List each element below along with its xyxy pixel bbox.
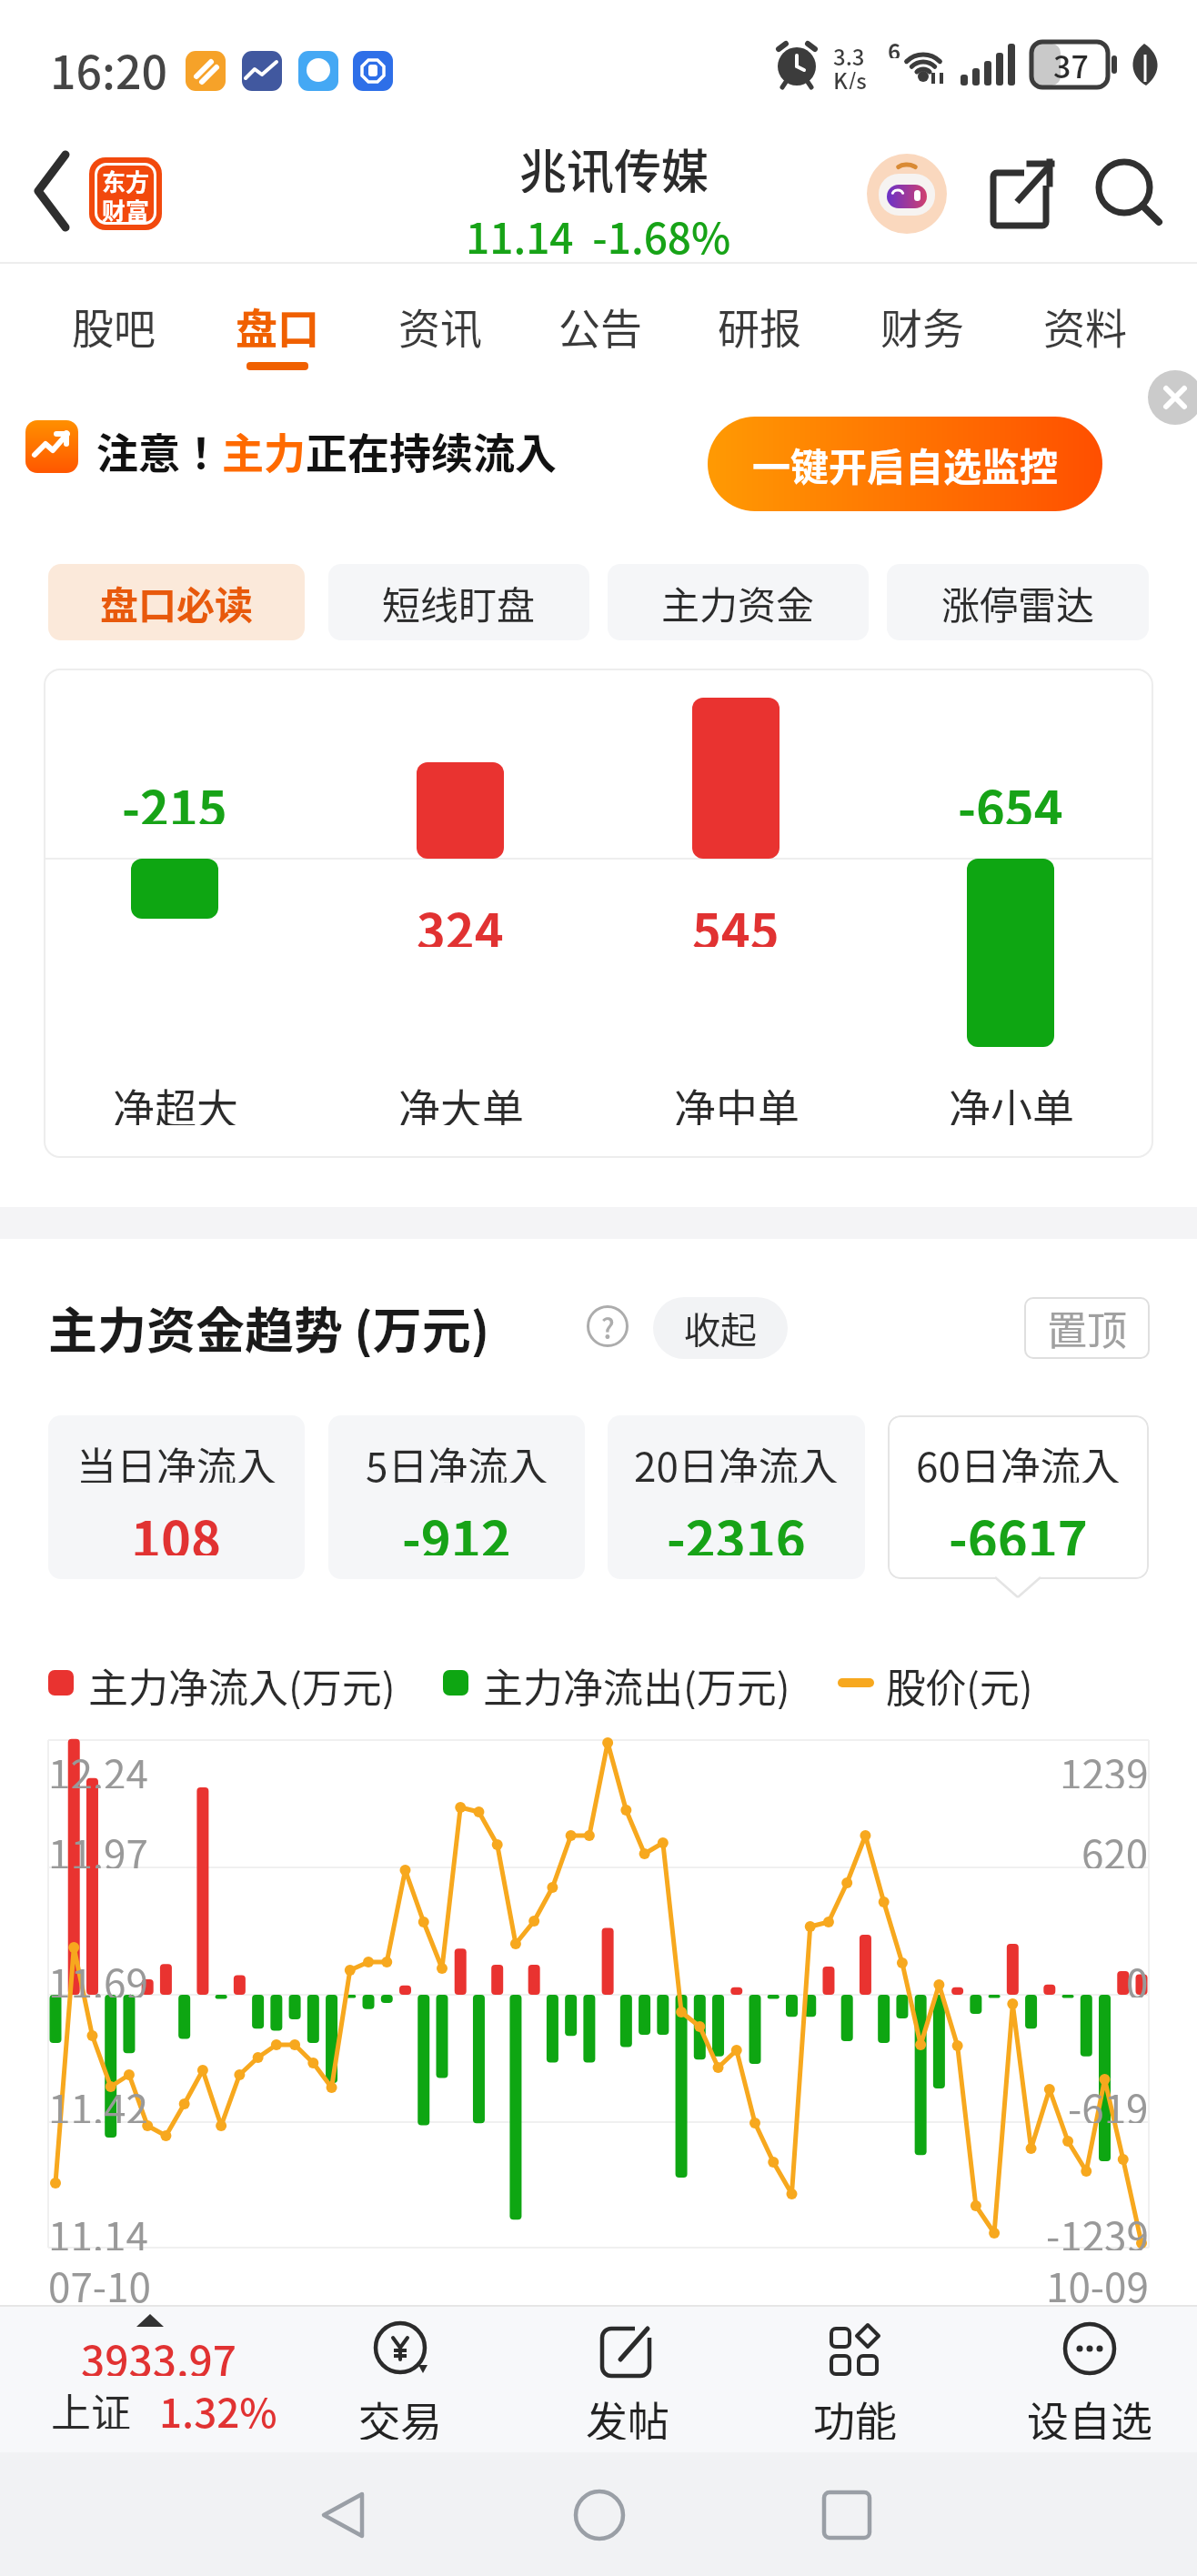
button[interactable]: 3933.97: [27, 2305, 291, 2452]
staticText: -6617: [949, 1499, 1088, 1555]
button[interactable]: 主力资金: [608, 564, 869, 640]
staticText: 功能: [813, 2389, 897, 2440]
staticText: 1.32%: [159, 2381, 277, 2429]
staticText: 11.97: [48, 1823, 148, 1868]
button[interactable]: 资讯: [377, 273, 504, 378]
button[interactable]: [554, 2474, 645, 2556]
button[interactable]: 盘口必读: [48, 564, 305, 640]
button[interactable]: 置顶: [1024, 1297, 1150, 1359]
staticText: 11.14 -1.68%: [466, 206, 731, 255]
staticText: 兆讯传媒: [519, 135, 709, 193]
button[interactable]: 资料: [1021, 273, 1149, 378]
staticText: 设自选: [1027, 2389, 1152, 2440]
button[interactable]: 公告: [537, 273, 664, 378]
staticText: 净超大: [113, 1076, 238, 1125]
button[interactable]: 发帖: [546, 2305, 709, 2452]
staticText: 108: [131, 1499, 222, 1555]
staticText: 正在持续流入: [306, 420, 557, 475]
staticText: 16:20: [50, 36, 167, 91]
staticText: 37: [1053, 43, 1089, 87]
staticText: -619: [1068, 2078, 1149, 2123]
staticText: 11.69: [48, 1952, 148, 1997]
staticText: -215: [122, 770, 227, 824]
staticText: -2316: [667, 1499, 806, 1555]
staticText: 3.3: [833, 40, 865, 65]
staticText: 注意！: [96, 420, 222, 475]
button[interactable]: 当日净流入: [48, 1415, 305, 1579]
staticText: 股价(元): [886, 1656, 1033, 1709]
button[interactable]: 设自选: [1001, 2305, 1179, 2452]
staticText: 07-10: [48, 2256, 151, 2305]
staticText: 11.14: [48, 2205, 148, 2250]
button[interactable]: 东方: [89, 157, 162, 230]
staticText: 主力净流出(万元): [483, 1656, 790, 1709]
staticText: 324: [417, 892, 504, 947]
staticText: 净中单: [674, 1076, 800, 1125]
staticText: 东方: [102, 164, 150, 194]
button[interactable]: 一键开启自选监控: [708, 417, 1102, 511]
staticText: 20日净流入: [634, 1435, 839, 1483]
staticText: 股吧: [72, 296, 156, 357]
staticText: 净大单: [398, 1076, 524, 1125]
staticText: -654: [958, 770, 1063, 824]
staticText: 资讯: [398, 296, 482, 357]
button[interactable]: [986, 156, 1062, 233]
staticText: 6: [888, 35, 901, 58]
button[interactable]: [1088, 153, 1170, 235]
button[interactable]: 财务: [859, 273, 986, 378]
button[interactable]: 功能: [773, 2305, 937, 2452]
staticText: 主力资金趋势 (万元): [48, 1292, 490, 1357]
button[interactable]: 短线盯盘: [328, 564, 589, 640]
staticText: 置顶: [1047, 1299, 1127, 1357]
button[interactable]: [1148, 370, 1197, 427]
staticText: 盘口: [236, 296, 319, 357]
staticText: 0: [1126, 1952, 1149, 1997]
staticText: 60日净流入: [916, 1435, 1121, 1483]
staticText: 短线盯盘: [382, 575, 536, 630]
staticText: 12.24: [48, 1743, 148, 1788]
staticText: 资料: [1043, 296, 1127, 357]
button[interactable]: 盘口: [214, 273, 341, 378]
staticText: K/s: [833, 64, 867, 89]
staticText: 收起: [684, 1302, 757, 1354]
button[interactable]: 20日净流入: [608, 1415, 865, 1579]
staticText: 财富: [102, 193, 150, 223]
staticText: 盘口必读: [100, 575, 254, 630]
staticText: 上证: [51, 2381, 131, 2429]
staticText: 620: [1081, 1823, 1149, 1868]
staticText: 11.42: [48, 2078, 148, 2123]
staticText: 10-09: [1046, 2256, 1149, 2305]
staticText: 545: [692, 892, 780, 947]
button[interactable]: [867, 154, 947, 234]
staticText: 财务: [880, 296, 964, 357]
button[interactable]: 60日净流入: [888, 1415, 1149, 1579]
staticText: 主力净流入(万元): [88, 1656, 396, 1709]
staticText: 一键开启自选监控: [752, 437, 1059, 492]
staticText: 当日净流入: [76, 1435, 277, 1483]
button[interactable]: [801, 2474, 892, 2556]
staticText: 净小单: [949, 1076, 1074, 1125]
button[interactable]: 研报: [696, 273, 823, 378]
staticText: 3933.97: [81, 2329, 237, 2376]
button[interactable]: 涨停雷达: [887, 564, 1149, 640]
staticText: 涨停雷达: [941, 575, 1095, 630]
button[interactable]: 股吧: [50, 273, 177, 378]
staticText: 公告: [558, 296, 642, 357]
staticText: -1239: [1046, 2205, 1149, 2250]
staticText: -912: [402, 1499, 511, 1555]
staticText: 发帖: [586, 2389, 669, 2440]
button[interactable]: 5日净流入: [328, 1415, 585, 1579]
button[interactable]: [18, 146, 91, 236]
staticText: 1239: [1060, 1743, 1149, 1788]
staticText: ?: [601, 1307, 615, 1346]
button[interactable]: [300, 2474, 391, 2556]
staticText: 研报: [718, 296, 801, 357]
button[interactable]: 收起: [653, 1297, 788, 1359]
staticText: 交易: [358, 2389, 442, 2440]
staticText: 主力: [222, 420, 306, 475]
button[interactable]: 交易: [318, 2305, 482, 2452]
staticText: 5日净流入: [366, 1435, 548, 1483]
staticText: 主力资金: [661, 575, 815, 630]
